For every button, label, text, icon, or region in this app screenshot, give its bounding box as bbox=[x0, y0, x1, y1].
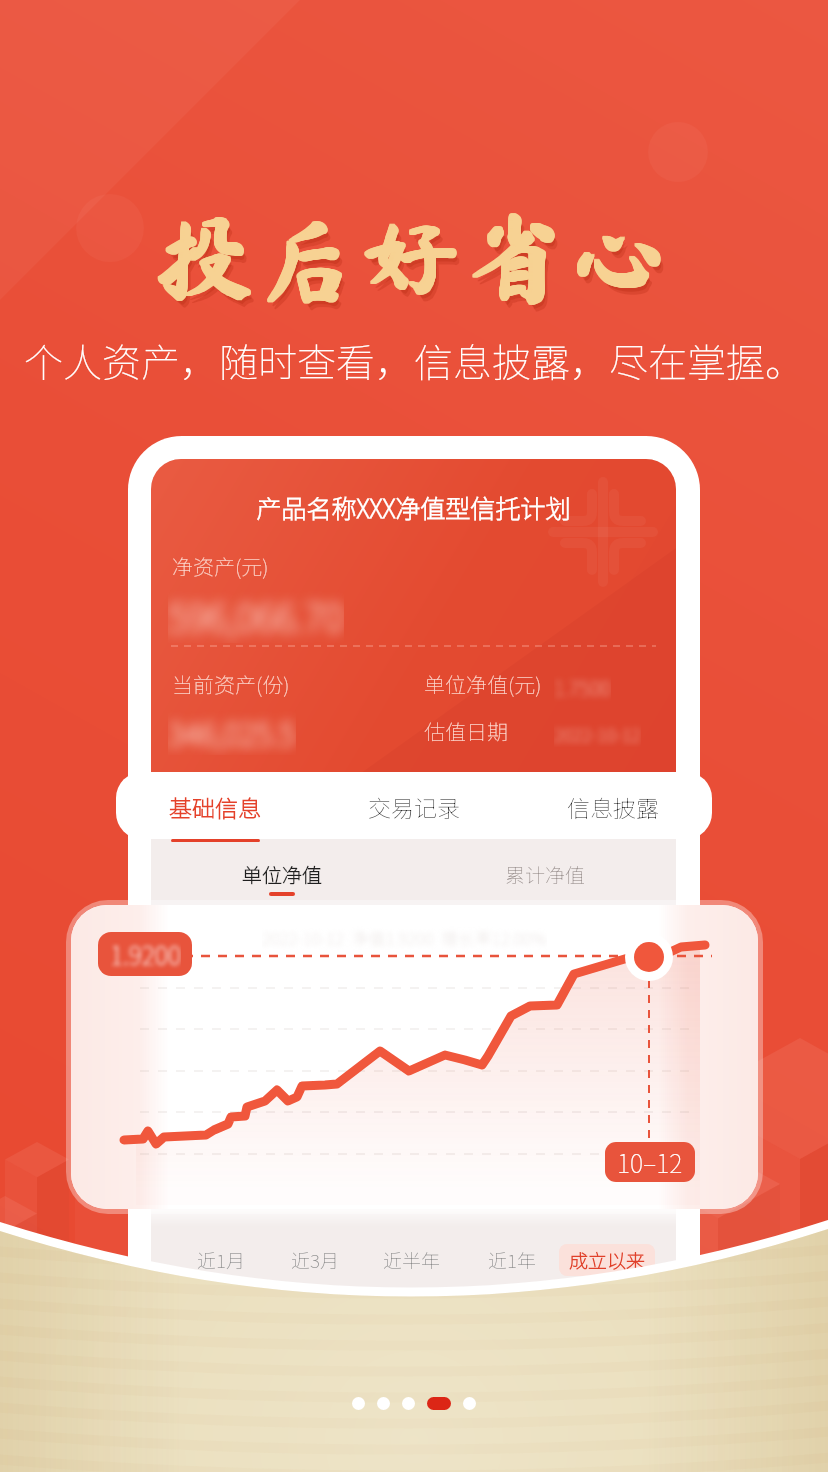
button[interactable]: 单位净值 bbox=[222, 856, 342, 900]
button[interactable]: Page 2 bbox=[377, 1397, 390, 1410]
staticText: 投后好省心 bbox=[2, 209, 828, 305]
staticText: 单位净值 bbox=[242, 860, 322, 889]
staticText: 投后好省心 bbox=[0, 210, 828, 306]
staticText: 投后好省心 bbox=[0, 208, 827, 304]
staticText: 1.9200 bbox=[110, 936, 181, 972]
staticText: 投后好省心 bbox=[0, 209, 827, 305]
staticText: 投后好省心 bbox=[2, 208, 828, 304]
staticText: 投后好省心 bbox=[5, 217, 828, 313]
button[interactable]: 近1月 bbox=[183, 1244, 259, 1276]
staticText: 单位净值(元) bbox=[424, 669, 542, 699]
button[interactable]: Page 3 bbox=[402, 1397, 415, 1410]
staticText: 估值日期 bbox=[424, 716, 508, 746]
staticText: 当前资产(份) bbox=[172, 669, 290, 699]
button[interactable]: 成立以来 bbox=[559, 1244, 655, 1276]
staticText: 投后好省心 bbox=[1, 208, 828, 304]
staticText: 个人资产，随时查看，信息披露，尽在掌握。 bbox=[0, 332, 828, 388]
staticText: 投后好省心 bbox=[1, 209, 828, 305]
button[interactable]: 近1年 bbox=[474, 1244, 550, 1276]
staticText: 基础信息 bbox=[169, 790, 261, 823]
staticText: 投后好省心 bbox=[0, 210, 827, 306]
button[interactable]: 近3月 bbox=[277, 1244, 353, 1276]
staticText: 投后好省心 bbox=[0, 209, 826, 305]
staticText: 近1年 bbox=[488, 1246, 536, 1274]
staticText: 产品名称XXX净值型信托计划 bbox=[151, 489, 676, 525]
staticText: 投后好省心 bbox=[0, 210, 826, 306]
staticText: 交易记录 bbox=[368, 790, 460, 823]
staticText: 净资产(元) bbox=[172, 551, 269, 581]
staticText: 投后好省心 bbox=[2, 210, 828, 306]
button[interactable]: 近半年 bbox=[374, 1244, 450, 1276]
staticText: 投后好省心 bbox=[0, 208, 826, 304]
button[interactable]: 基础信息 bbox=[116, 772, 314, 839]
staticText: 投后好省心 bbox=[0, 208, 828, 304]
staticText: 10–12 bbox=[617, 1144, 683, 1180]
staticText: 1.7500 bbox=[554, 673, 611, 702]
button[interactable]: Page 1 bbox=[352, 1397, 365, 1410]
staticText: 投后好省心 bbox=[1, 210, 828, 306]
button[interactable]: 信息披露 bbox=[513, 772, 712, 839]
staticText: 近3月 bbox=[291, 1246, 339, 1274]
staticText: 近1月 bbox=[197, 1246, 245, 1274]
staticText: 2022-10-12 bbox=[554, 721, 641, 747]
staticText: 信息披露 bbox=[567, 790, 659, 823]
button[interactable]: 累计净值 bbox=[485, 856, 605, 900]
button[interactable]: 交易记录 bbox=[314, 772, 513, 839]
staticText: 投后好省心 bbox=[3, 214, 828, 310]
button[interactable]: Page 4 bbox=[427, 1397, 451, 1410]
staticText: 596,066.70 bbox=[168, 588, 344, 643]
staticText: 成立以来 bbox=[569, 1246, 646, 1274]
staticText: 近半年 bbox=[383, 1246, 441, 1274]
staticText: 346,025.5 bbox=[168, 710, 296, 755]
staticText: 投后好省心 bbox=[0, 209, 828, 305]
staticText: 累计净值 bbox=[505, 860, 585, 889]
button[interactable]: Page 5 bbox=[463, 1397, 476, 1410]
